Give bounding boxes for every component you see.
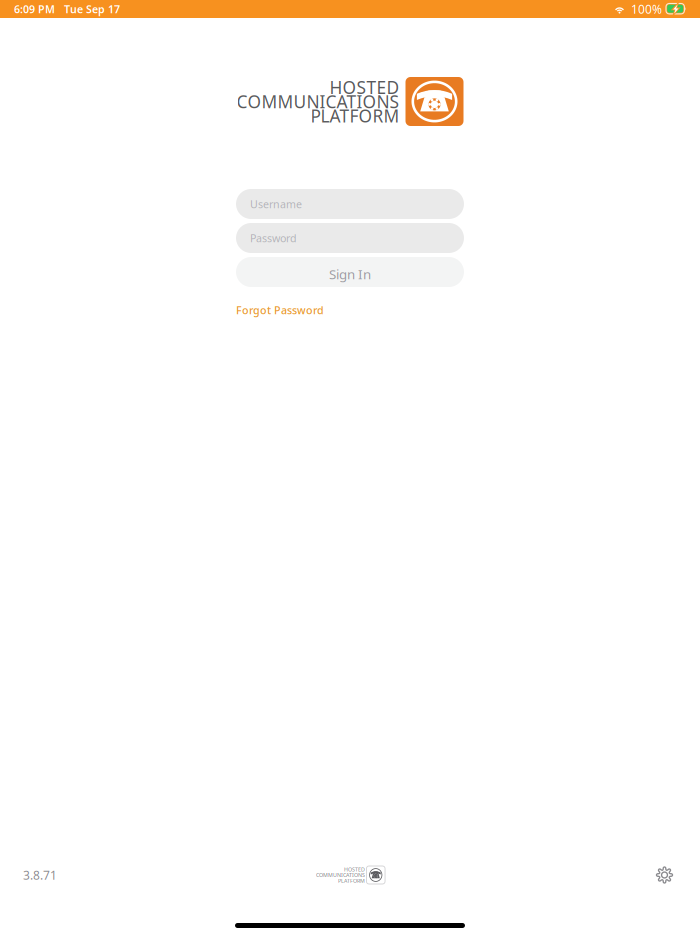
staticText: 6:09 PM [14, 2, 55, 16]
staticText: COMMUNICATIONS [236, 90, 399, 113]
staticText: PLATFORM [338, 877, 365, 884]
staticText: PLATFORM [310, 104, 399, 127]
staticText: Password [250, 231, 297, 245]
staticText: 100% [631, 1, 662, 17]
staticText: Tue Sep 17 [64, 2, 120, 16]
staticText: COMMUNICATIONS [316, 871, 365, 879]
staticText: Username [250, 197, 302, 211]
staticText: Forgot Password [236, 303, 324, 317]
staticText: 3.8.71 [23, 867, 57, 883]
button[interactable]: Forgot Password [236, 301, 324, 319]
button[interactable]: Sign In [236, 257, 464, 287]
staticText: HOSTED [329, 76, 399, 99]
button[interactable]: Username [236, 189, 464, 219]
button[interactable]: Password [236, 223, 464, 253]
staticText: Sign In [329, 265, 371, 283]
staticText: HOSTED [344, 866, 365, 873]
button[interactable]: Settings [656, 866, 673, 883]
